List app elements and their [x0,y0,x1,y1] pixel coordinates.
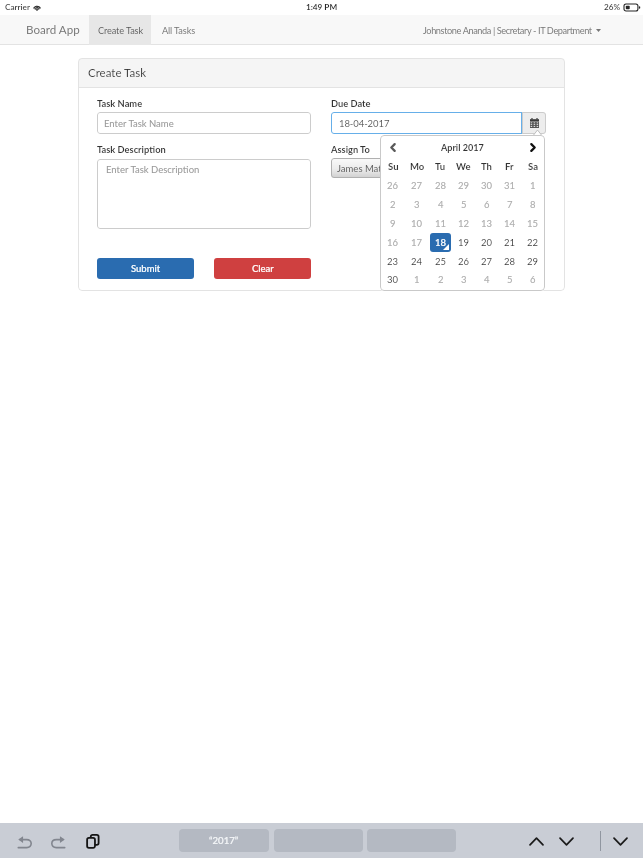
button[interactable]: 27 [475,252,498,271]
staticText: 26 [458,256,470,267]
staticText: 22 [527,237,539,248]
button[interactable]: 15 [521,214,544,233]
staticText: 7 [507,199,513,210]
button[interactable]: 4 [429,195,452,214]
staticText: 4 [484,274,490,285]
staticText: 17 [411,237,423,248]
button[interactable]: 28 [498,252,521,271]
staticText: 15 [527,218,539,229]
staticText: Task Description [97,144,166,155]
button[interactable]: 31 [498,176,521,195]
button[interactable]: 26 [381,176,405,195]
button[interactable]: 17 [405,233,429,252]
button[interactable]: Enter Task Name [97,112,311,134]
staticText: 16 [387,237,399,248]
button[interactable]: Clear [214,258,311,279]
staticText: 24 [411,256,423,267]
button[interactable]: 30 [475,176,498,195]
button[interactable]: 14 [498,214,521,233]
button[interactable]: James Mathew [331,158,439,178]
button[interactable]: 26 [452,252,475,271]
staticText: 2 [438,274,444,285]
button[interactable]: 29 [452,176,475,195]
button[interactable]: 13 [475,214,498,233]
button[interactable]: 11 [429,214,452,233]
button[interactable]: 2 [381,195,405,214]
button[interactable]: 27 [405,176,429,195]
staticText: Fr [505,161,514,172]
button[interactable]: Open calendar [522,112,546,134]
button[interactable]: 5 [452,195,475,214]
button[interactable]: 5 [498,271,521,288]
button[interactable]: “2017” [179,829,269,852]
staticText: All Tasks [162,25,196,36]
button[interactable]: 10 [405,214,429,233]
button[interactable]: Next month [521,138,544,156]
staticText: 29 [458,180,470,191]
staticText: 26 [387,180,399,191]
staticText: Th [481,161,492,172]
staticText: 29 [527,256,539,267]
button[interactable]: 24 [405,252,429,271]
staticText: We [456,161,471,172]
button[interactable]: Create Task [89,15,151,45]
button[interactable]: 9 [381,214,405,233]
staticText: 21 [504,237,516,248]
staticText: Enter Task Description [106,164,200,175]
button[interactable]: 1 [521,176,544,195]
button[interactable]: Board App [0,15,89,45]
staticText: 18-04-2017 [339,118,390,129]
button[interactable]: 20 [475,233,498,252]
button[interactable]: 6 [521,271,544,288]
staticText: 28 [504,256,516,267]
button[interactable]: 18-04-2017 [331,112,522,134]
staticText: Johnstone Ananda | Secretary - IT Depart… [423,25,592,36]
button[interactable]: Redo [51,836,65,848]
staticText: 23 [387,256,399,267]
button[interactable]: All Tasks [151,15,207,45]
staticText: Carrier [5,2,30,12]
button[interactable]: 8 [521,195,544,214]
button[interactable]: 29 [521,252,544,271]
button[interactable]: 19 [452,233,475,252]
button[interactable]: 16 [381,233,405,252]
button[interactable]: Previous month [381,138,404,156]
staticText: 25 [435,256,447,267]
staticText: 6 [530,274,536,285]
staticText: Tu [435,161,446,172]
button[interactable]: Enter Task Description [97,159,311,229]
staticText: 13 [481,218,493,229]
button[interactable]: Johnstone Ananda | Secretary - IT Depart… [411,15,643,45]
staticText: 12 [458,218,470,229]
button[interactable]: 22 [521,233,544,252]
button[interactable]: Previous field [526,833,546,849]
staticText: 3 [414,199,420,210]
staticText: Task Name [97,98,143,109]
staticText: 28 [435,180,447,191]
button[interactable]: 6 [475,195,498,214]
staticText: 19 [458,237,470,248]
button[interactable]: 30 [381,271,405,288]
button[interactable]: 2 [429,271,452,288]
button[interactable]: Undo [18,836,32,848]
button[interactable]: 25 [429,252,452,271]
button[interactable]: Next field [556,833,576,849]
staticText: Su [388,161,399,172]
staticText: 1:49 PM [306,2,338,12]
button[interactable]: 23 [381,252,405,271]
button[interactable]: 12 [452,214,475,233]
button[interactable]: Submit [97,258,194,279]
button[interactable]: 28 [429,176,452,195]
button[interactable]: Paste [86,834,100,849]
button[interactable]: 1 [405,271,429,288]
button[interactable]: 7 [498,195,521,214]
button[interactable]: 3 [452,271,475,288]
staticText: 2 [390,199,396,210]
button[interactable]: 18 [429,233,452,252]
button[interactable]: 3 [405,195,429,214]
button[interactable]: 21 [498,233,521,252]
button[interactable]: 4 [475,271,498,288]
button[interactable]: Hide keyboard [610,833,630,849]
